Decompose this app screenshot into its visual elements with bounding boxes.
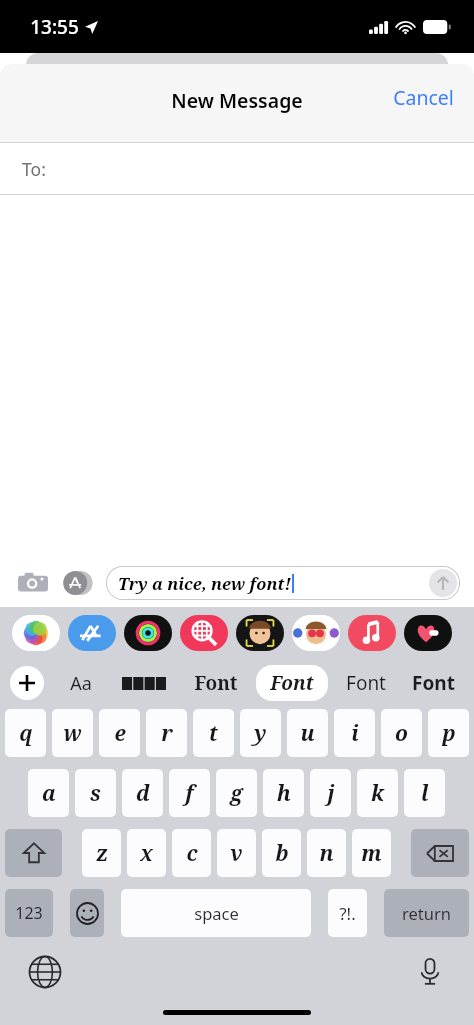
staticText: k bbox=[371, 779, 384, 808]
staticText: Font bbox=[412, 670, 455, 696]
staticText: n bbox=[319, 839, 334, 868]
button[interactable]: Delete bbox=[411, 829, 469, 877]
staticText: To: bbox=[22, 157, 46, 181]
staticText: Try a nice, new font! bbox=[118, 572, 291, 594]
staticText: v bbox=[230, 839, 243, 868]
button[interactable]: App Store bbox=[62, 568, 92, 598]
staticText: return bbox=[402, 902, 451, 924]
staticText: b bbox=[275, 839, 289, 868]
button[interactable]: Font bbox=[190, 666, 242, 700]
button[interactable]: Memoji bbox=[236, 615, 284, 651]
staticText: y bbox=[254, 719, 267, 748]
button[interactable]: s bbox=[75, 769, 116, 817]
button[interactable]: a bbox=[28, 769, 69, 817]
button[interactable]: x bbox=[127, 829, 166, 877]
button[interactable]: Camera bbox=[18, 568, 48, 598]
button[interactable]: l bbox=[404, 769, 445, 817]
button[interactable]: Space bbox=[121, 889, 311, 937]
button[interactable]: #images bbox=[180, 615, 228, 651]
staticText: Cancel bbox=[393, 84, 454, 111]
button[interactable]: Change keyboard bbox=[28, 955, 62, 989]
staticText: g bbox=[230, 779, 243, 808]
staticText: Font bbox=[270, 670, 314, 696]
button[interactable]: u bbox=[287, 709, 328, 757]
button[interactable]: Shift bbox=[5, 829, 62, 877]
button[interactable]: Emoji bbox=[70, 889, 104, 937]
staticText: 13:55 bbox=[30, 14, 79, 40]
staticText: d bbox=[136, 779, 150, 808]
button[interactable]: Font bbox=[342, 666, 390, 700]
button[interactable]: d bbox=[122, 769, 163, 817]
staticText: x bbox=[140, 839, 153, 868]
staticText: a bbox=[42, 779, 56, 808]
button[interactable]: Numbers bbox=[5, 889, 53, 937]
staticText: w bbox=[63, 719, 82, 748]
staticText: l bbox=[421, 779, 429, 808]
button[interactable]: p bbox=[428, 709, 469, 757]
staticText: f bbox=[185, 779, 194, 808]
staticText: Font bbox=[194, 670, 238, 696]
button[interactable]: To: bbox=[0, 143, 474, 194]
staticText: m bbox=[361, 839, 382, 868]
button[interactable]: c bbox=[172, 829, 211, 877]
staticText: u bbox=[300, 719, 315, 748]
button[interactable]: g bbox=[216, 769, 257, 817]
button[interactable]: r bbox=[146, 709, 187, 757]
staticText: space bbox=[194, 902, 239, 924]
staticText: p bbox=[442, 719, 456, 748]
button[interactable]: Add font bbox=[10, 666, 44, 700]
staticText: e bbox=[114, 719, 126, 748]
button[interactable]: h bbox=[263, 769, 304, 817]
staticText: h bbox=[277, 779, 291, 808]
button[interactable]: Font bbox=[408, 666, 459, 700]
button[interactable]: Punctuation bbox=[328, 889, 367, 937]
button[interactable]: q bbox=[5, 709, 46, 757]
button[interactable]: m bbox=[352, 829, 391, 877]
button[interactable]: f bbox=[169, 769, 210, 817]
button[interactable]: Try a nice, new font! bbox=[106, 566, 460, 600]
button[interactable]: Photos bbox=[12, 615, 60, 651]
staticText: c bbox=[186, 839, 198, 868]
button[interactable]: i bbox=[334, 709, 375, 757]
staticText: Font bbox=[346, 670, 386, 696]
button[interactable]: Blocky font bbox=[118, 673, 170, 694]
button[interactable]: n bbox=[307, 829, 346, 877]
button[interactable]: Aa bbox=[66, 667, 96, 700]
button[interactable]: b bbox=[262, 829, 301, 877]
button[interactable]: Music bbox=[348, 615, 396, 651]
staticText: o bbox=[395, 719, 408, 748]
staticText: j bbox=[327, 779, 335, 808]
button[interactable]: Dictation bbox=[414, 955, 446, 987]
button[interactable]: v bbox=[217, 829, 256, 877]
button[interactable]: Font bbox=[256, 665, 328, 701]
button[interactable]: Cancel bbox=[377, 76, 474, 131]
staticText: Aa bbox=[70, 671, 92, 696]
staticText: r bbox=[161, 719, 173, 748]
button[interactable]: Activity bbox=[124, 615, 172, 651]
staticText: ?!. bbox=[339, 902, 356, 925]
staticText: t bbox=[209, 719, 218, 748]
staticText: New Message bbox=[171, 87, 303, 114]
button[interactable]: y bbox=[240, 709, 281, 757]
button[interactable]: Memoji 2 bbox=[292, 615, 340, 651]
button[interactable]: o bbox=[381, 709, 422, 757]
button[interactable]: App Store bbox=[68, 615, 116, 651]
staticText: i bbox=[351, 719, 359, 748]
staticText: s bbox=[90, 779, 101, 808]
button[interactable]: Fitness bbox=[404, 615, 452, 651]
button[interactable]: t bbox=[193, 709, 234, 757]
button[interactable]: e bbox=[99, 709, 140, 757]
button[interactable]: z bbox=[82, 829, 121, 877]
button[interactable]: w bbox=[52, 709, 93, 757]
button[interactable]: k bbox=[357, 769, 398, 817]
staticText: q bbox=[19, 719, 33, 748]
button[interactable]: Send bbox=[429, 569, 457, 597]
button[interactable]: Return bbox=[384, 889, 469, 937]
staticText: z bbox=[96, 839, 108, 868]
staticText: 123 bbox=[15, 902, 43, 924]
button[interactable]: j bbox=[310, 769, 351, 817]
